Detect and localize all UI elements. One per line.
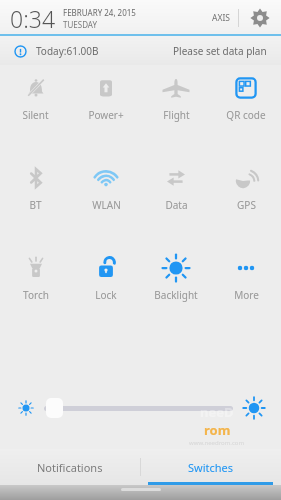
button[interactable]: BT xyxy=(0,163,71,212)
button[interactable]: More xyxy=(211,253,281,302)
button[interactable]: GPS xyxy=(211,163,281,212)
button[interactable]: Minimum brightness xyxy=(12,394,40,422)
staticText: rom xyxy=(204,421,231,439)
button[interactable]: Settings xyxy=(247,5,273,31)
staticText: www.needrom.com xyxy=(189,439,245,447)
button[interactable]: Silent xyxy=(0,73,71,122)
button[interactable]: WLAN xyxy=(71,163,141,212)
button[interactable]: AXIS xyxy=(212,12,230,24)
staticText: Please set data plan xyxy=(173,44,267,58)
button[interactable]: Torch xyxy=(0,253,71,302)
button[interactable]: Flight xyxy=(141,73,211,122)
staticText: Data xyxy=(165,198,188,212)
staticText: Today:61.00B xyxy=(36,44,99,58)
staticText: Power+ xyxy=(88,108,124,122)
staticText: neeD xyxy=(200,403,234,421)
staticText: QR code xyxy=(226,108,266,122)
staticText: TUESDAY xyxy=(63,19,97,30)
staticText: More xyxy=(234,288,259,302)
staticText: Switches xyxy=(188,460,234,475)
staticText: Silent xyxy=(22,108,49,122)
button[interactable]: Today:61.00B xyxy=(0,36,281,65)
button[interactable]: Lock xyxy=(71,253,141,302)
staticText: Torch xyxy=(23,288,49,302)
staticText: FEBRUARY 24, 2015 xyxy=(63,7,136,18)
staticText: WLAN xyxy=(92,198,121,212)
button[interactable]: QR code xyxy=(211,73,281,122)
staticText: Lock xyxy=(95,288,117,302)
button[interactable] xyxy=(44,395,233,421)
staticText: GPS xyxy=(237,198,256,212)
button[interactable]: Switches xyxy=(141,449,281,485)
staticText: Backlight xyxy=(154,288,198,302)
button[interactable]: Data xyxy=(141,163,211,212)
staticText: BT xyxy=(29,198,42,212)
button[interactable]: Backlight xyxy=(141,253,211,302)
button[interactable]: Maximum brightness xyxy=(239,393,269,423)
staticText: 0:34 xyxy=(10,3,56,34)
staticText: Notifications xyxy=(37,460,103,475)
button[interactable]: Power+ xyxy=(71,73,141,122)
button[interactable]: Notifications xyxy=(0,449,140,485)
staticText: Flight xyxy=(163,108,190,122)
